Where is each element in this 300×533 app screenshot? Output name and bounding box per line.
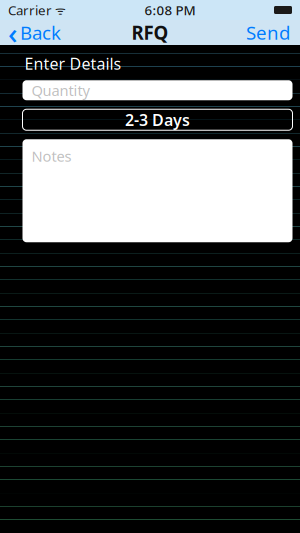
staticText: Send: [246, 20, 290, 45]
staticText: 2-3 Days: [125, 109, 190, 130]
staticText: ᯤ: [52, 2, 66, 18]
staticText: ‹: [8, 13, 18, 52]
button[interactable]: Quantity: [22, 80, 292, 100]
staticText: Enter Details: [24, 53, 121, 74]
staticText: 6:08 PM: [144, 1, 195, 19]
button[interactable]: Notes: [22, 139, 292, 242]
staticText: Quantity: [31, 80, 89, 100]
button[interactable]: 2-3 Days: [22, 109, 292, 130]
button[interactable]: Send: [236, 20, 300, 45]
staticText: Back: [20, 20, 61, 45]
staticText: Notes: [31, 146, 71, 166]
staticText: Carrier: [8, 1, 52, 19]
staticText: RFQ: [131, 20, 168, 45]
button[interactable]: ‹: [0, 20, 69, 45]
